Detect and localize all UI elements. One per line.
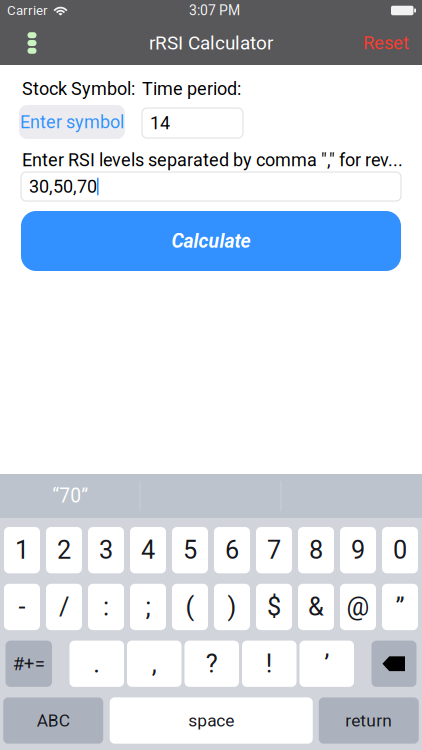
button[interactable]: ABC — [3, 697, 103, 744]
staticText: 9 — [351, 535, 365, 565]
staticText: return — [345, 710, 392, 731]
button[interactable]: ” — [382, 584, 418, 630]
button[interactable]: . — [69, 641, 124, 687]
button[interactable]: space — [110, 697, 313, 744]
button[interactable]: 4 — [130, 527, 166, 573]
staticText: Enter symbol — [20, 111, 124, 133]
button[interactable]: 5 — [172, 527, 208, 573]
button[interactable]: ) — [214, 584, 250, 630]
button[interactable]: ; — [130, 584, 166, 630]
button[interactable]: Enter symbol — [19, 105, 125, 139]
staticText: Reset — [363, 32, 409, 54]
staticText: 4 — [141, 535, 155, 565]
staticText: 5 — [183, 535, 197, 565]
staticText: space — [188, 710, 234, 731]
button[interactable]: / — [46, 584, 82, 630]
staticText: 1 — [15, 535, 29, 565]
staticText: @ — [346, 592, 369, 622]
button[interactable]: Reset — [363, 21, 422, 65]
staticText: 3 — [99, 535, 113, 565]
staticText: ” — [395, 592, 404, 622]
staticText: ABC — [37, 710, 70, 731]
staticText: 8 — [309, 535, 323, 565]
staticText: 30,50,70 — [29, 176, 97, 197]
button[interactable]: 0 — [382, 527, 418, 573]
button[interactable]: ’ — [299, 641, 354, 687]
staticText: Time period: — [142, 78, 241, 99]
button[interactable]: 30,50,70 — [21, 172, 401, 201]
button[interactable]: ? — [184, 641, 239, 687]
staticText: ) — [227, 592, 236, 622]
staticText: #+= — [13, 653, 45, 675]
button[interactable]: & — [298, 584, 334, 630]
button[interactable]: 14 — [142, 108, 243, 138]
staticText: Stock Symbol: — [22, 78, 135, 99]
button[interactable]: Calculate — [21, 211, 401, 271]
staticText: & — [308, 592, 324, 622]
staticText: , — [152, 649, 157, 679]
staticText: rRSI Calculator — [149, 32, 273, 54]
staticText: Carrier — [7, 3, 48, 18]
button[interactable]: return — [319, 697, 419, 744]
button[interactable]: $ — [256, 584, 292, 630]
staticText: / — [59, 592, 69, 622]
button[interactable]: ( — [172, 584, 208, 630]
staticText: ! — [266, 649, 273, 679]
staticText: “70” — [52, 485, 88, 507]
staticText: ( — [185, 592, 194, 622]
staticText: 2 — [57, 535, 71, 565]
button[interactable]: 3 — [88, 527, 124, 573]
button[interactable]: Delete — [371, 641, 416, 687]
staticText: 7 — [267, 535, 281, 565]
button[interactable]: 1 — [4, 527, 40, 573]
staticText: : — [103, 592, 109, 622]
button[interactable]: 2 — [46, 527, 82, 573]
staticText: $ — [267, 592, 281, 622]
button[interactable]: ! — [242, 641, 296, 687]
staticText: 6 — [225, 535, 239, 565]
button[interactable]: @ — [340, 584, 376, 630]
staticText: Enter RSI levels separated by comma "," … — [22, 149, 403, 171]
button[interactable]: 8 — [298, 527, 334, 573]
button[interactable]: “70” — [0, 474, 141, 518]
button[interactable]: 9 — [340, 527, 376, 573]
button[interactable]: , — [127, 641, 181, 687]
button[interactable]: #+= — [5, 641, 52, 687]
staticText: - — [18, 592, 25, 622]
button[interactable]: : — [88, 584, 124, 630]
staticText: 0 — [393, 535, 407, 565]
staticText: . — [93, 649, 100, 679]
staticText: ’ — [324, 649, 329, 679]
button[interactable]: Menu — [10, 21, 54, 65]
staticText: ? — [206, 649, 218, 679]
staticText: Calculate — [171, 230, 250, 252]
button[interactable]: 6 — [214, 527, 250, 573]
staticText: 3:07 PM — [189, 2, 240, 19]
button[interactable]: - — [4, 584, 40, 630]
staticText: 14 — [150, 112, 170, 134]
staticText: ; — [145, 592, 150, 622]
button[interactable]: 7 — [256, 527, 292, 573]
